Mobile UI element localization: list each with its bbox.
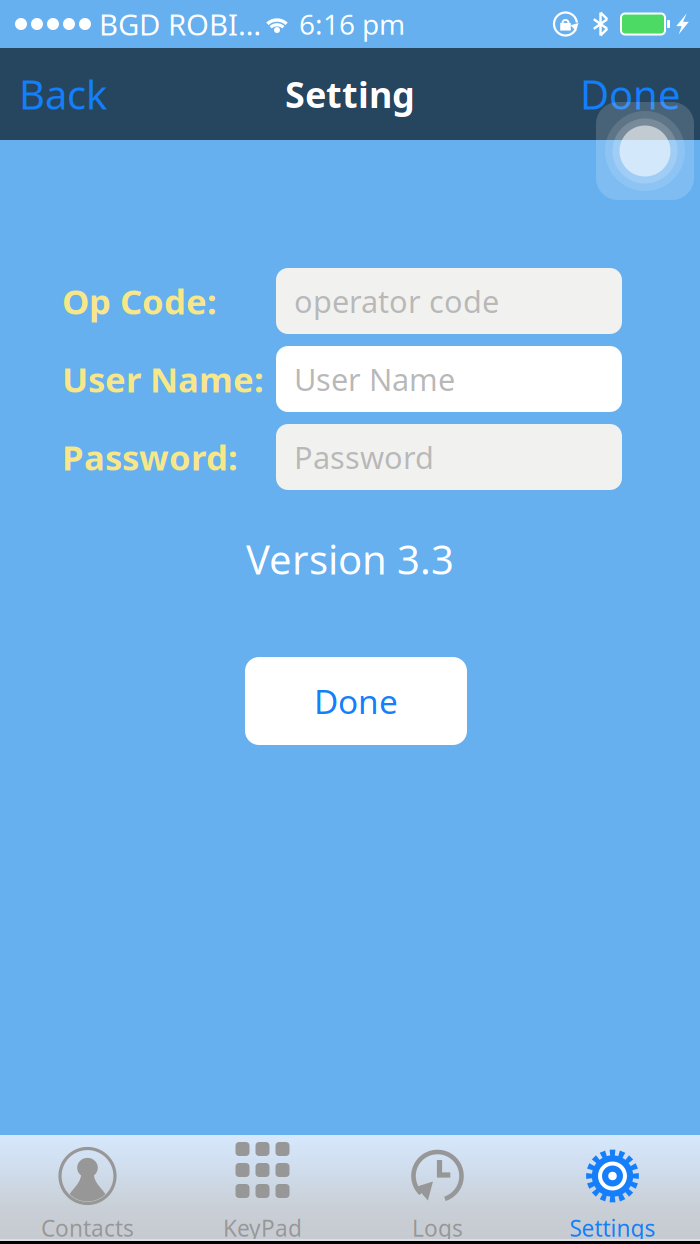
button[interactable]: Settings xyxy=(525,1135,700,1244)
staticText: Contacts xyxy=(41,1213,134,1243)
staticText: Logs xyxy=(412,1213,463,1243)
button[interactable]: AssistiveTouch xyxy=(596,102,694,200)
staticText: operator code xyxy=(294,281,499,321)
staticText: Op Code: xyxy=(62,278,217,324)
button[interactable]: Back xyxy=(0,48,107,140)
button[interactable]: Contacts xyxy=(0,1135,175,1244)
staticText: 6:16 pm xyxy=(299,5,405,43)
staticText: KeyPad xyxy=(223,1213,302,1243)
staticText: Done xyxy=(580,67,681,120)
staticText: Settings xyxy=(569,1213,655,1243)
button[interactable]: KeyPad xyxy=(175,1135,350,1244)
button[interactable]: Logs xyxy=(350,1135,525,1244)
staticText: Password: xyxy=(62,434,238,480)
button[interactable]: Done xyxy=(245,657,467,745)
staticText: Back xyxy=(19,67,107,120)
button[interactable]: Done xyxy=(580,48,700,140)
staticText: Done xyxy=(314,679,398,723)
staticText: Setting xyxy=(285,70,415,118)
staticText: Version 3.3 xyxy=(246,532,454,585)
staticText: User Name: xyxy=(62,356,264,402)
staticText: Password xyxy=(294,437,434,477)
staticText: User Name xyxy=(294,359,455,399)
staticText: BGD ROBI… xyxy=(99,4,261,43)
